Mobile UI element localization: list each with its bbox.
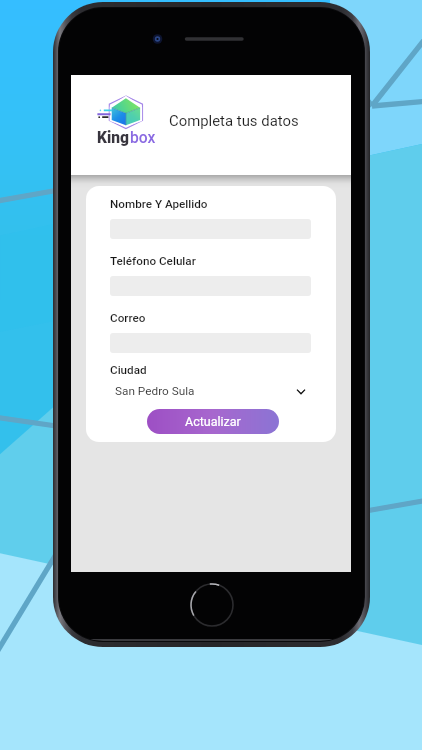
staticText: Completa tus datos xyxy=(169,112,299,129)
staticText: box xyxy=(130,129,156,147)
staticText: Actualizar xyxy=(185,414,241,429)
staticText: Teléfono Celular xyxy=(110,254,196,268)
other: Inicio xyxy=(190,583,234,627)
button[interactable]: San Pedro Sula xyxy=(115,382,307,400)
staticText: Correo xyxy=(110,311,146,325)
staticText: King xyxy=(97,129,130,147)
staticText: San Pedro Sula xyxy=(115,384,195,398)
staticText: Ciudad xyxy=(110,363,147,377)
staticText: Nombre Y Apellido xyxy=(110,197,208,211)
button[interactable]: Actualizar xyxy=(147,409,279,434)
